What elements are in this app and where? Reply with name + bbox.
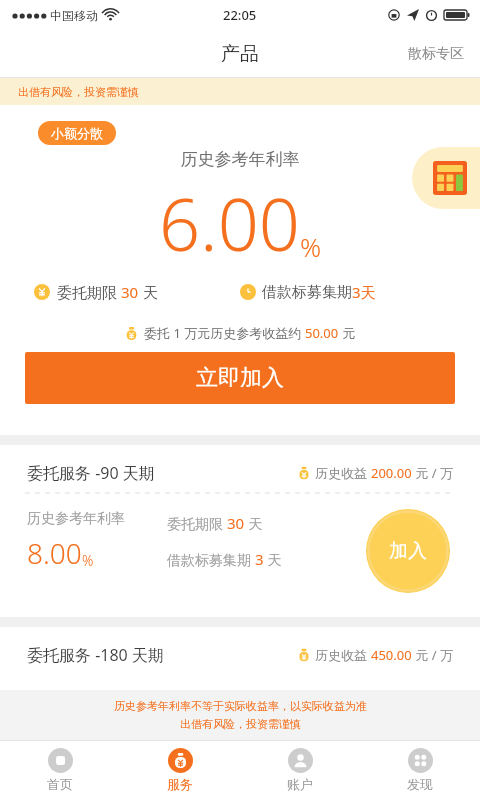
button[interactable]: 委托服务 -180 天期 xyxy=(0,627,480,727)
staticText: 委托服务 -180 天期 xyxy=(27,644,164,666)
button[interactable]: 委托服务 -90 天期 xyxy=(0,445,480,617)
staticText: 元 / 万 xyxy=(412,646,453,664)
staticText: 30 xyxy=(121,282,139,302)
staticText: 委托期限 xyxy=(57,282,121,302)
button[interactable]: 服务 xyxy=(120,740,240,800)
staticText: 200.00 xyxy=(371,464,412,482)
staticText: 30 xyxy=(227,513,245,533)
staticText: 产品 xyxy=(221,42,259,66)
staticText: 天 xyxy=(264,550,282,569)
staticText: 22:05 xyxy=(223,6,257,24)
staticText: 账户 xyxy=(287,776,313,792)
staticText: 3 xyxy=(255,549,264,569)
staticText: 元 / 万 xyxy=(412,464,453,482)
staticText: 50.00 xyxy=(305,324,339,342)
staticText: 历史参考年利率 xyxy=(27,510,125,528)
staticText: 立即加入 xyxy=(196,364,284,392)
staticText: 天 xyxy=(245,514,263,533)
staticText: 发现 xyxy=(407,776,433,792)
button[interactable]: 小额分散 xyxy=(38,121,116,145)
staticText: 元 xyxy=(339,324,356,342)
staticText: 委托期限 xyxy=(167,514,227,533)
staticText: % xyxy=(82,551,94,570)
staticText: 委托 1 万元历史参考收益约 xyxy=(144,324,305,342)
staticText: 历史参考年利率不等于实际收益率，以实际收益为准 xyxy=(114,699,367,713)
staticText: 散标专区 xyxy=(408,45,464,63)
staticText: 小额分散 xyxy=(51,125,103,141)
staticText: 历史收益 xyxy=(315,464,371,482)
staticText: 首页 xyxy=(47,776,73,792)
staticText: 出借有风险，投资需谨慎 xyxy=(18,85,139,99)
staticText: % xyxy=(300,229,322,264)
button[interactable]: 账户 xyxy=(240,740,360,800)
staticText: 借款标募集期 xyxy=(262,283,352,302)
button[interactable]: 散标专区 xyxy=(392,30,480,78)
button[interactable]: 加入 xyxy=(366,509,450,593)
staticText: 服务 xyxy=(167,776,193,792)
staticText: 历史收益 xyxy=(315,646,371,664)
staticText: 加入 xyxy=(389,539,427,563)
staticText: 6.00 xyxy=(159,174,300,272)
staticText: 8.00 xyxy=(27,534,82,572)
staticText: 450.00 xyxy=(371,646,412,664)
staticText: 3天 xyxy=(352,282,376,302)
staticText: 天 xyxy=(139,282,158,302)
staticText: 借款标募集期 xyxy=(167,550,255,569)
button[interactable]: 发现 xyxy=(360,740,480,800)
button[interactable]: 收益计算器 xyxy=(412,147,480,209)
staticText: 历史参考年利率 xyxy=(0,149,480,170)
staticText: 委托服务 -90 天期 xyxy=(27,462,155,484)
button[interactable]: 立即加入 xyxy=(25,352,455,404)
staticText: 出借有风险，投资需谨慎 xyxy=(180,717,301,731)
button[interactable]: 首页 xyxy=(0,740,120,800)
staticText: 中国移动 xyxy=(50,8,98,23)
